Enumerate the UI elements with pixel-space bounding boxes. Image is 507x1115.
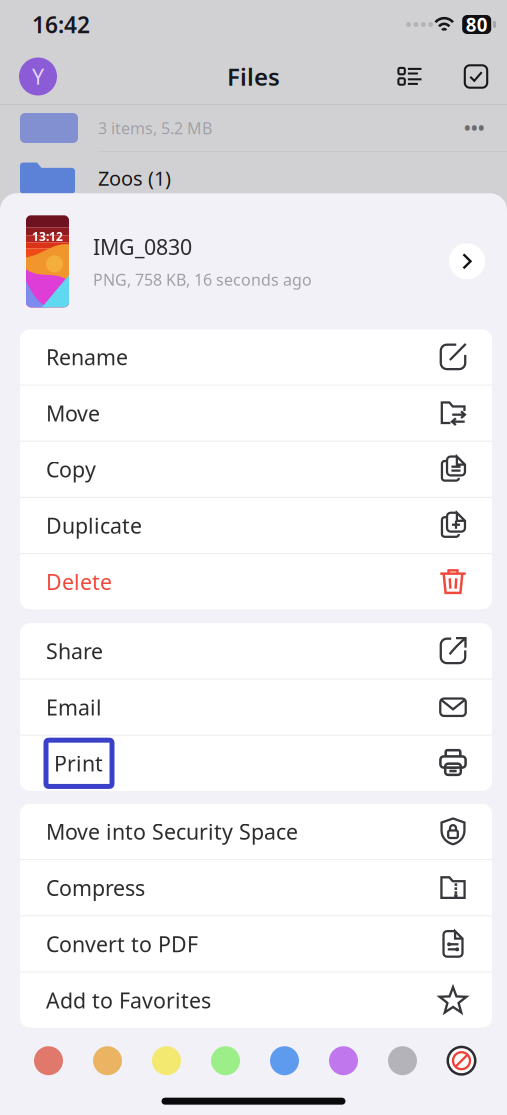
staticText: IMG_0830 — [93, 232, 192, 261]
staticText: Compress — [46, 873, 145, 902]
button[interactable]: Print — [20, 736, 492, 791]
staticText: Share — [46, 637, 103, 665]
staticText: 80 — [466, 12, 488, 37]
button[interactable]: Copy — [20, 442, 492, 497]
staticText: Duplicate — [46, 511, 142, 540]
button[interactable]: Tag color — [314, 1039, 373, 1083]
button[interactable]: Move into Security Space — [20, 804, 492, 859]
button[interactable]: Tag color — [196, 1039, 255, 1083]
button[interactable]: Compress — [20, 860, 492, 915]
staticText: Rename — [46, 343, 128, 371]
button[interactable]: Duplicate — [20, 498, 492, 553]
button[interactable]: Tag color — [19, 1039, 78, 1083]
staticText: PNG, 758 KB, 16 seconds ago — [93, 269, 312, 290]
button[interactable]: No color — [432, 1039, 491, 1083]
staticText: 3 items, 5.2 MB — [98, 117, 212, 139]
button[interactable]: Move — [20, 385, 492, 441]
button[interactable]: Account — [19, 57, 57, 95]
staticText: 16:42 — [32, 9, 90, 39]
button[interactable]: Select — [457, 57, 495, 95]
staticText: Convert to PDF — [46, 930, 198, 958]
staticText: Delete — [46, 567, 112, 596]
button[interactable]: Share — [20, 623, 492, 678]
button[interactable]: Tag color — [137, 1039, 196, 1083]
button[interactable]: Add to Favorites — [20, 972, 492, 1028]
button[interactable]: View options — [391, 57, 429, 95]
staticText: Files — [227, 61, 280, 92]
button[interactable]: Email — [20, 679, 492, 735]
button[interactable]: Show details — [449, 243, 485, 279]
button[interactable]: Delete — [20, 554, 492, 609]
button[interactable]: Convert to PDF — [20, 916, 492, 971]
staticText: Print — [54, 749, 103, 777]
button[interactable]: Tag color — [373, 1039, 432, 1083]
staticText: Zoos (1) — [98, 165, 171, 191]
staticText: Email — [46, 693, 102, 721]
staticText: Move — [46, 399, 100, 427]
staticText: Add to Favorites — [46, 986, 211, 1014]
staticText: Move into Security Space — [46, 817, 298, 846]
button[interactable]: Tag color — [255, 1039, 314, 1083]
button[interactable]: Tag color — [78, 1039, 137, 1083]
staticText: ••• — [464, 116, 485, 139]
staticText: Copy — [46, 455, 96, 483]
staticText: 13:12 — [32, 228, 63, 244]
button[interactable]: Rename — [20, 329, 492, 384]
staticText: Y — [32, 62, 44, 91]
